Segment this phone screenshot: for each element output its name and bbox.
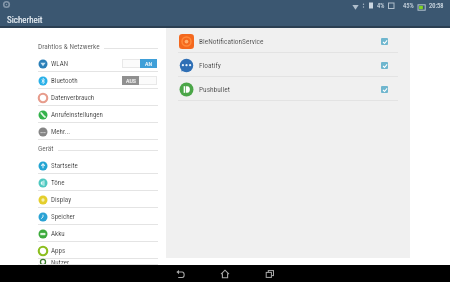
staticText: 20:58 <box>429 2 444 10</box>
button[interactable]: Speicher <box>0 208 163 225</box>
button[interactable]: Apps <box>0 242 163 259</box>
staticText: Mehr... <box>51 128 71 136</box>
button[interactable]: Enable Pushbullet <box>381 86 388 93</box>
staticText: Floatify <box>199 61 221 70</box>
button[interactable]: Pushbullet <box>166 77 410 101</box>
button[interactable]: AN <box>122 59 157 68</box>
staticText: Drahtlos & Netzwerke <box>38 42 100 51</box>
button[interactable]: Enable BleNotificationService <box>381 38 388 45</box>
button[interactable]: Anrufeinstellungen <box>0 106 163 123</box>
button[interactable]: Back <box>171 265 188 282</box>
button[interactable]: AUS <box>122 76 157 85</box>
button[interactable]: Nutzer <box>0 259 163 265</box>
staticText: Pushbullet <box>199 85 230 94</box>
staticText: Gerät <box>38 144 54 153</box>
button[interactable]: Display <box>0 191 163 208</box>
staticText: AN <box>145 60 153 67</box>
staticText: Apps <box>51 247 66 255</box>
button[interactable]: Datenverbrauch <box>0 89 163 106</box>
staticText: Nutzer <box>51 259 70 265</box>
staticText: Datenverbrauch <box>51 94 95 102</box>
button[interactable]: Mehr... <box>0 123 163 140</box>
button[interactable]: WLAN <box>0 55 163 72</box>
staticText: 45% <box>403 2 414 10</box>
staticText: Display <box>51 196 72 204</box>
button[interactable]: Akku <box>0 225 163 242</box>
staticText: WLAN <box>51 60 69 68</box>
staticText: AUS <box>126 77 136 84</box>
staticText: Akku <box>51 230 65 238</box>
button[interactable]: Recent apps <box>261 265 278 282</box>
button[interactable]: Startseite <box>0 157 163 174</box>
button[interactable]: Floatify <box>166 53 410 77</box>
button[interactable]: Töne <box>0 174 163 191</box>
staticText: Bluetooth <box>51 77 78 85</box>
staticText: Speicher <box>51 213 75 221</box>
staticText: Sicherheit <box>7 15 43 26</box>
staticText: 4% <box>377 2 385 10</box>
staticText: Anrufeinstellungen <box>51 111 104 119</box>
button[interactable]: Home <box>216 265 233 282</box>
button[interactable]: BleNotificationService <box>166 29 410 53</box>
staticText: BleNotificationService <box>199 37 264 46</box>
staticText: Startseite <box>51 162 78 170</box>
staticText: Töne <box>51 179 65 187</box>
button[interactable]: Bluetooth <box>0 72 163 89</box>
button[interactable]: Enable Floatify <box>381 62 388 69</box>
